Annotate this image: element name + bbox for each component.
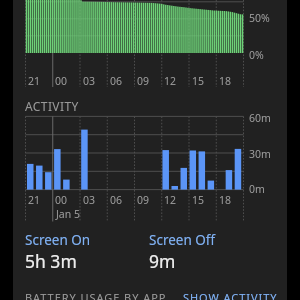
- staticText: 15: [192, 74, 205, 88]
- staticText: 0%: [249, 48, 264, 62]
- staticText: 60m: [249, 111, 271, 125]
- staticText: BATTERY USAGE BY APP: [25, 290, 167, 300]
- staticText: 50%: [249, 11, 270, 25]
- staticText: 9m: [149, 249, 176, 273]
- staticText: 5h 3m: [25, 249, 77, 273]
- staticText: 06: [110, 193, 123, 207]
- staticText: 0m: [249, 182, 265, 196]
- staticText: 03: [83, 74, 96, 88]
- staticText: 12: [164, 193, 177, 207]
- staticText: Screen On: [25, 231, 91, 249]
- staticText: 30m: [249, 147, 271, 161]
- staticText: 09: [137, 74, 150, 88]
- button[interactable]: Screen Off: [149, 231, 216, 273]
- staticText: 15: [192, 193, 205, 207]
- staticText: 12: [164, 74, 177, 88]
- staticText: 06: [110, 74, 123, 88]
- staticText: 18: [219, 193, 232, 207]
- staticText: ACTIVITY: [25, 98, 79, 114]
- staticText: Screen Off: [149, 231, 216, 249]
- staticText: 21: [28, 193, 41, 207]
- staticText: 00: [55, 193, 68, 207]
- staticText: 21: [28, 74, 41, 88]
- staticText: Jan 5: [56, 207, 80, 221]
- staticText: 03: [83, 193, 96, 207]
- button[interactable]: SHOW ACTIVITY: [183, 290, 278, 300]
- staticText: 00: [55, 74, 68, 88]
- button[interactable]: Screen On: [25, 231, 91, 273]
- staticText: 18: [219, 74, 232, 88]
- staticText: 09: [137, 193, 150, 207]
